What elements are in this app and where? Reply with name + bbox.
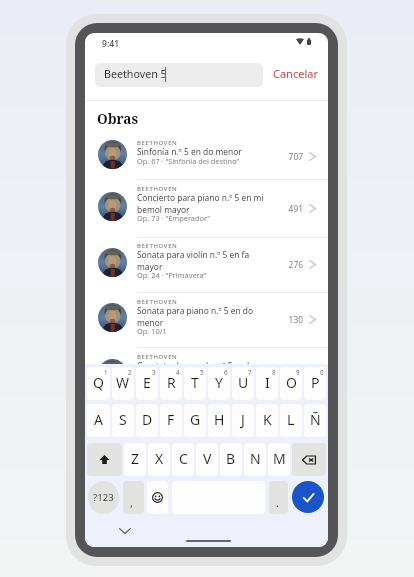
staticText: Concierto para piano n.º 5 en mi bemol m… (137, 192, 270, 216)
staticText: Ñ (310, 410, 321, 429)
staticText: W (116, 373, 130, 392)
button[interactable]: E (136, 367, 158, 400)
button[interactable]: K (256, 404, 278, 437)
button[interactable]: Buscar (292, 481, 324, 513)
staticText: Sonata para violín n.º 5 en fa mayor (137, 249, 270, 273)
staticText: Q (93, 373, 104, 392)
button[interactable]: Y (208, 367, 230, 400)
button[interactable] (270, 62, 320, 87)
staticText: A (94, 410, 103, 429)
staticText: I (265, 373, 270, 392)
button[interactable]: T (184, 367, 206, 400)
button[interactable]: Ocultar teclado (116, 522, 134, 540)
button[interactable]: Coma (123, 481, 144, 514)
button[interactable]: I (256, 367, 278, 400)
button[interactable]: Z (124, 443, 146, 476)
staticText: Y (215, 373, 223, 392)
staticText: O (286, 373, 297, 392)
staticText: Op. 18/5 (137, 381, 167, 391)
staticText: T (191, 373, 199, 392)
other: Wi-Fi (296, 38, 304, 45)
staticText: 5 (200, 368, 204, 377)
staticText: 3 (152, 368, 156, 377)
staticText: Obras (97, 109, 139, 128)
staticText: . (276, 495, 279, 510)
button[interactable]: W (112, 367, 134, 400)
button[interactable]: X (148, 443, 170, 476)
staticText: X (155, 449, 164, 468)
staticText: P (311, 373, 320, 392)
staticText: Z (131, 449, 140, 468)
staticText: G (190, 410, 201, 429)
button[interactable]: BEETHOVEN (85, 293, 328, 348)
staticText: BEETHOVEN (137, 185, 178, 193)
button[interactable]: ?123 (88, 481, 119, 514)
other: Batería (307, 38, 311, 45)
button[interactable]: Q (87, 367, 110, 400)
button[interactable]: M (268, 443, 290, 476)
staticText: 2 (128, 368, 132, 377)
staticText: BEETHOVEN (137, 298, 178, 306)
staticText: 96 (263, 370, 303, 381)
staticText: BEETHOVEN (137, 242, 178, 250)
button[interactable]: V (196, 443, 218, 476)
staticText: 7 (248, 368, 252, 377)
staticText: 4 (176, 368, 180, 377)
staticText: N (250, 449, 261, 468)
staticText: B (226, 449, 236, 468)
button[interactable]: P (304, 367, 326, 400)
button[interactable]: Borrar (292, 443, 326, 476)
button[interactable]: H (208, 404, 230, 437)
button[interactable]: Ñ (304, 404, 326, 437)
staticText: Cuarteto de cuerda n.º 5 en la mayor (137, 360, 270, 384)
staticText: Op. 67 · “Sinfonía del destino” (137, 156, 240, 166)
staticText: 9 (296, 368, 300, 377)
button[interactable]: C (172, 443, 194, 476)
button[interactable]: BEETHOVEN (85, 180, 328, 238)
staticText: 276 (263, 259, 303, 270)
staticText: F (167, 410, 175, 429)
staticText: S (119, 410, 127, 429)
button[interactable]: U (232, 367, 254, 400)
staticText: H (214, 410, 225, 429)
button[interactable]: N (244, 443, 266, 476)
button[interactable]: L (280, 404, 302, 437)
button[interactable]: Emoticonos (147, 481, 168, 514)
staticText: 491 (263, 203, 303, 214)
staticText: E (143, 373, 151, 392)
button[interactable]: Mayúsculas (87, 443, 122, 476)
staticText: R (167, 373, 176, 392)
staticText: V (203, 449, 212, 468)
staticText: 8 (272, 368, 276, 377)
button[interactable]: B (220, 443, 242, 476)
button[interactable]: F (160, 404, 182, 437)
staticText: M (273, 449, 286, 468)
staticText: 707 (263, 151, 303, 162)
staticText: 130 (263, 314, 303, 325)
staticText: Op. 73 · “Emperador” (137, 213, 210, 223)
staticText: Sinfonía n.º 5 en do menor (137, 146, 270, 157)
staticText: C (179, 449, 188, 468)
button[interactable]: R (160, 367, 182, 400)
button[interactable]: BEETHOVEN (85, 134, 328, 180)
staticText: L (287, 410, 295, 429)
button[interactable]: D (136, 404, 158, 437)
button[interactable]: Punto (269, 481, 288, 514)
button[interactable]: S (112, 404, 134, 437)
button[interactable]: J (232, 404, 254, 437)
staticText: U (238, 373, 249, 392)
staticText: , (130, 495, 133, 510)
staticText: Beethoven 5 (104, 67, 167, 82)
button[interactable]: A (87, 404, 110, 437)
button[interactable]: O (280, 367, 302, 400)
staticText: Sonata para piano n.º 5 en do menor (137, 305, 270, 329)
staticText: BEETHOVEN (137, 353, 178, 361)
button[interactable]: BEETHOVEN (85, 237, 328, 293)
staticText: Cancelar (273, 66, 318, 81)
staticText: 1 (104, 368, 108, 377)
button[interactable]: G (184, 404, 206, 437)
button[interactable] (95, 63, 263, 87)
button[interactable]: BEETHOVEN (85, 348, 328, 403)
staticText: K (263, 410, 272, 429)
